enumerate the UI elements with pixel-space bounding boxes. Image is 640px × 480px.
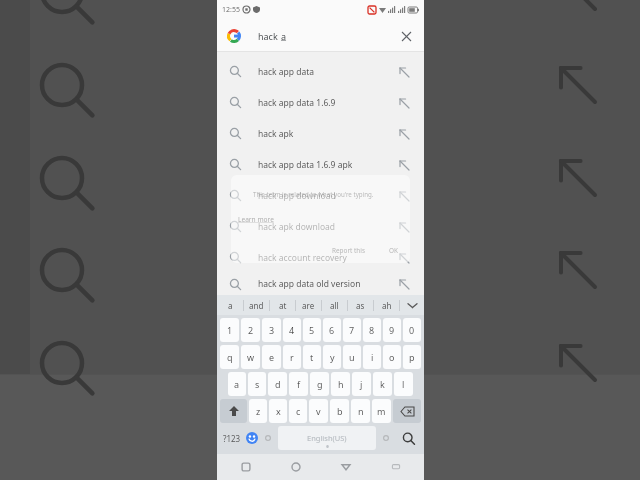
staticText: c (296, 405, 301, 417)
staticText: a (234, 378, 240, 390)
button[interactable]: y (323, 345, 341, 369)
button[interactable]: n (351, 399, 370, 423)
button[interactable]: hack account recovery (217, 242, 424, 273)
button[interactable]: hack apk download (217, 211, 424, 242)
button[interactable]: as (348, 295, 373, 315)
button[interactable]: f (289, 372, 308, 396)
button[interactable]: and (244, 295, 269, 315)
staticText: a (281, 30, 287, 42)
button[interactable]: Space (278, 426, 376, 450)
button[interactable]: l (394, 372, 413, 396)
button[interactable]: u (343, 345, 361, 369)
button[interactable]: 7 (343, 318, 361, 342)
button[interactable]: Settings (260, 426, 276, 450)
button[interactable]: Period (378, 426, 394, 450)
button[interactable]: t (303, 345, 321, 369)
button[interactable]: at (270, 295, 295, 315)
button[interactable]: Search (395, 426, 421, 450)
button[interactable]: Clear search (398, 28, 414, 44)
staticText: hack (258, 30, 281, 42)
button[interactable]: Hide keyboard (385, 456, 407, 478)
button[interactable]: 2 (241, 318, 260, 342)
button[interactable]: 9 (383, 318, 401, 342)
button[interactable]: Insert suggestion (394, 62, 414, 82)
button[interactable]: all (322, 295, 347, 315)
button[interactable]: g (310, 372, 329, 396)
staticText: r (290, 351, 294, 363)
staticText: hack account recovery (258, 252, 347, 264)
button[interactable]: Emoji (244, 426, 260, 450)
button[interactable]: hack app data (217, 56, 424, 87)
staticText: j (360, 378, 363, 390)
button[interactable]: hack app data old version (217, 273, 424, 295)
button[interactable]: OK (389, 246, 398, 255)
staticText: i (371, 351, 374, 363)
button[interactable]: r (283, 345, 301, 369)
button[interactable]: z (249, 399, 267, 423)
button[interactable]: m (372, 399, 391, 423)
button[interactable]: c (289, 399, 307, 423)
button[interactable]: x (269, 399, 287, 423)
button[interactable]: d (268, 372, 287, 396)
button[interactable]: hack app download (217, 180, 424, 211)
button[interactable]: k (373, 372, 392, 396)
button[interactable]: Recents (235, 456, 257, 478)
button[interactable]: i (363, 345, 381, 369)
button[interactable]: Insert suggestion (394, 155, 414, 175)
staticText: q (227, 351, 233, 363)
button[interactable]: Hide suggestions (400, 295, 424, 315)
button[interactable]: Back (335, 456, 357, 478)
button[interactable]: ?123 (220, 426, 243, 450)
button[interactable]: p (403, 345, 421, 369)
button[interactable]: are (296, 295, 321, 315)
button[interactable]: q (220, 345, 239, 369)
button[interactable]: Insert suggestion (394, 124, 414, 144)
staticText: 0 (409, 324, 415, 336)
button[interactable]: 8 (363, 318, 381, 342)
button[interactable]: hack app data 1.6.9 (217, 87, 424, 118)
button[interactable]: hack app data 1.6.9 apk (217, 149, 424, 180)
button[interactable]: w (241, 345, 260, 369)
button[interactable]: Insert suggestion (394, 93, 414, 113)
button[interactable]: hack (217, 19, 424, 52)
staticText: 5 (309, 324, 315, 336)
button[interactable]: 1 (220, 318, 239, 342)
button[interactable]: v (309, 399, 328, 423)
button[interactable]: b (330, 399, 349, 423)
staticText: p (409, 351, 415, 363)
button[interactable]: Insert suggestion (394, 217, 414, 237)
button[interactable]: Insert suggestion (394, 274, 414, 294)
button[interactable]: o (383, 345, 401, 369)
button[interactable]: e (262, 345, 281, 369)
button[interactable]: 3 (262, 318, 281, 342)
button[interactable]: Home (285, 456, 307, 478)
button[interactable]: a (217, 295, 243, 315)
button[interactable]: 6 (323, 318, 341, 342)
staticText: t (310, 351, 314, 363)
staticText: 3 (269, 324, 275, 336)
staticText: 1 (227, 324, 233, 336)
button[interactable]: 4 (283, 318, 301, 342)
button[interactable]: 5 (303, 318, 321, 342)
button[interactable]: Insert suggestion (394, 186, 414, 206)
staticText: e (269, 351, 275, 363)
staticText: n (358, 405, 364, 417)
button[interactable]: a (228, 372, 246, 396)
staticText: English(US) (307, 433, 347, 443)
staticText: are (302, 300, 315, 311)
staticText: b (337, 405, 343, 417)
button[interactable]: Shift (220, 399, 247, 423)
button[interactable]: j (352, 372, 371, 396)
button[interactable]: Report this (332, 246, 365, 255)
button[interactable]: 0 (403, 318, 421, 342)
button[interactable]: Learn more (238, 215, 274, 224)
staticText: z (256, 405, 261, 417)
button[interactable]: hack apk (217, 118, 424, 149)
button[interactable]: ah (374, 295, 399, 315)
button[interactable]: Insert suggestion (394, 248, 414, 268)
button[interactable]: Backspace (393, 399, 421, 423)
staticText: hack app data (258, 66, 315, 78)
button[interactable]: h (331, 372, 350, 396)
staticText: and (249, 300, 264, 311)
button[interactable]: s (248, 372, 266, 396)
